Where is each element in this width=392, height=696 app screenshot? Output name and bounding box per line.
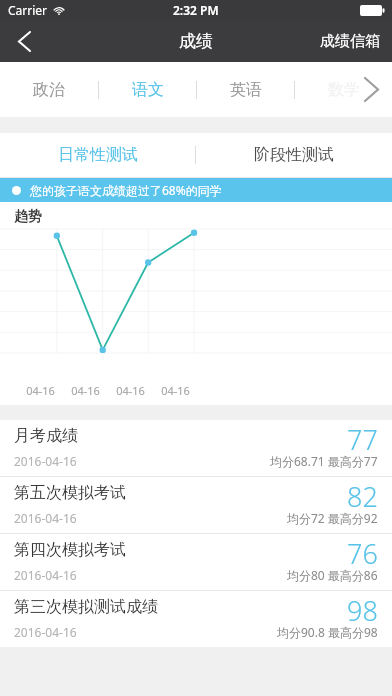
staticText: 04-16 — [63, 383, 108, 398]
staticText: 均分80 最高分86 — [287, 567, 378, 583]
staticText: 76 — [347, 535, 378, 572]
staticText: 数学 — [328, 80, 360, 100]
staticText: Carrier — [8, 2, 48, 18]
staticText: 82 — [347, 478, 378, 515]
staticText: 77 — [347, 421, 378, 458]
staticText: 2016-04-16 — [14, 567, 77, 583]
button[interactable]: Back — [0, 20, 48, 62]
button[interactable]: 英语 — [197, 62, 294, 117]
staticText: 2016-04-16 — [14, 510, 77, 526]
staticText: 成绩 — [179, 31, 213, 52]
staticText: 政治 — [33, 80, 65, 100]
button[interactable]: 第五次模拟考试 — [0, 477, 392, 533]
staticText: 阶段性测试 — [254, 145, 334, 165]
staticText: 98 — [347, 592, 378, 629]
staticText: 月考成绩 — [14, 426, 78, 446]
staticText: 2016-04-16 — [14, 453, 77, 469]
button[interactable]: 日常性测试 — [0, 133, 195, 177]
staticText: 均分72 最高分92 — [287, 510, 378, 526]
button[interactable]: More subjects — [350, 62, 392, 117]
staticText: 第五次模拟考试 — [14, 483, 126, 503]
staticText: 04-16 — [153, 383, 198, 398]
button[interactable]: 月考成绩 — [0, 420, 392, 476]
button[interactable]: 语文 — [99, 62, 196, 117]
button[interactable]: 第三次模拟测试成绩 — [0, 591, 392, 647]
staticText: 第三次模拟测试成绩 — [14, 597, 158, 617]
button[interactable]: 政治 — [0, 62, 98, 117]
button[interactable]: 阶段性测试 — [196, 133, 392, 177]
staticText: 2:32 PM — [173, 2, 219, 18]
staticText: 英语 — [230, 80, 262, 100]
staticText: 语文 — [132, 80, 164, 100]
button[interactable]: 成绩信箱 — [308, 20, 392, 62]
staticText: 均分90.8 最高分98 — [277, 624, 378, 640]
staticText: 第四次模拟考试 — [14, 540, 126, 560]
button[interactable]: 您的孩子语文成绩超过了68%的同学 — [0, 178, 392, 202]
staticText: 04-16 — [18, 383, 63, 398]
staticText: 04-16 — [108, 383, 153, 398]
button[interactable]: 第四次模拟考试 — [0, 534, 392, 590]
staticText: 均分68.71 最高分77 — [270, 453, 378, 469]
staticText: 2016-04-16 — [14, 624, 77, 640]
staticText: 日常性测试 — [58, 145, 138, 165]
staticText: 您的孩子语文成绩超过了68%的同学 — [30, 182, 222, 198]
staticText: 趋势 — [14, 208, 42, 226]
staticText: 成绩信箱 — [320, 32, 380, 51]
